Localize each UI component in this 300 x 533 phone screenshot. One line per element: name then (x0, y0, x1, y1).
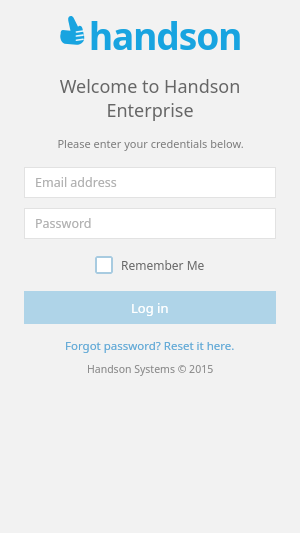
staticText: handson (89, 10, 242, 50)
staticText: Forgot password? Reset it here. (65, 338, 235, 354)
button[interactable]: Password (24, 208, 276, 239)
staticText: Email address (35, 174, 117, 191)
staticText: Password (35, 215, 92, 232)
button[interactable]: Remember Me (91, 253, 209, 277)
staticText: Handson Systems © 2015 (87, 362, 214, 376)
button[interactable]: Email address (24, 167, 276, 198)
staticText: Please enter your credentials below. (57, 136, 244, 151)
staticText: Log in (131, 299, 169, 317)
staticText: Remember Me (121, 257, 205, 273)
staticText: Welcome to Handson Enterprise (34, 74, 266, 122)
other: Handson logo (59, 14, 87, 46)
button[interactable]: Forgot password? Reset it here. (59, 336, 241, 356)
button[interactable]: Log in (24, 291, 276, 324)
